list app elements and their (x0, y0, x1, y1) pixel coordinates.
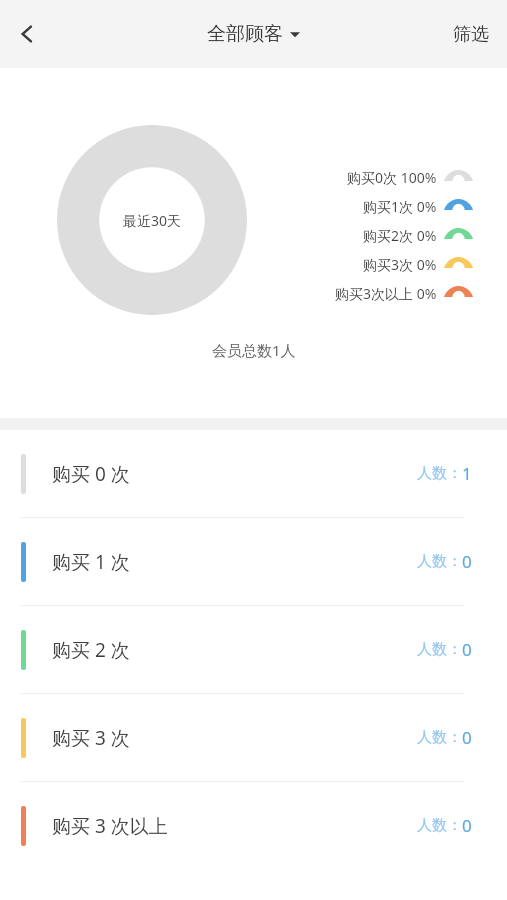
staticText: 人数： (417, 552, 462, 571)
staticText: 购买1次 0% (363, 197, 437, 216)
button[interactable]: 全部顾客 (201, 18, 306, 50)
staticText: 会员总数1人 (212, 340, 296, 360)
staticText: 购买0次 100% (347, 168, 437, 187)
staticText: 人数： (417, 640, 462, 659)
button[interactable]: 购买 1 次 (0, 518, 507, 605)
staticText: 人数： (417, 816, 462, 835)
staticText: 购买3次以上 0% (335, 284, 437, 303)
staticText: 0 (462, 726, 472, 749)
button[interactable]: Back (4, 11, 50, 57)
button[interactable]: 购买 3 次 (0, 694, 507, 781)
staticText: 购买 1 次 (52, 549, 130, 575)
staticText: 1 (462, 462, 472, 485)
staticText: 筛选 (453, 23, 489, 46)
staticText: 购买 0 次 (52, 461, 130, 487)
staticText: 购买 3 次 (52, 725, 130, 751)
staticText: 人数： (417, 728, 462, 747)
staticText: 购买3次 0% (363, 255, 437, 274)
button[interactable]: 购买 2 次 (0, 606, 507, 693)
staticText: 0 (462, 814, 472, 837)
button[interactable]: 购买 0 次 (0, 430, 507, 517)
staticText: 购买2次 0% (363, 226, 437, 245)
staticText: 最近30天 (123, 211, 182, 230)
button[interactable]: 购买 3 次以上 (0, 782, 507, 869)
staticText: 购买 3 次以上 (52, 813, 168, 839)
staticText: 全部顾客 (207, 22, 283, 46)
staticText: 0 (462, 550, 472, 573)
button[interactable]: 筛选 (435, 11, 507, 58)
staticText: 人数： (417, 464, 462, 483)
staticText: 购买 2 次 (52, 637, 130, 663)
staticText: 0 (462, 638, 472, 661)
